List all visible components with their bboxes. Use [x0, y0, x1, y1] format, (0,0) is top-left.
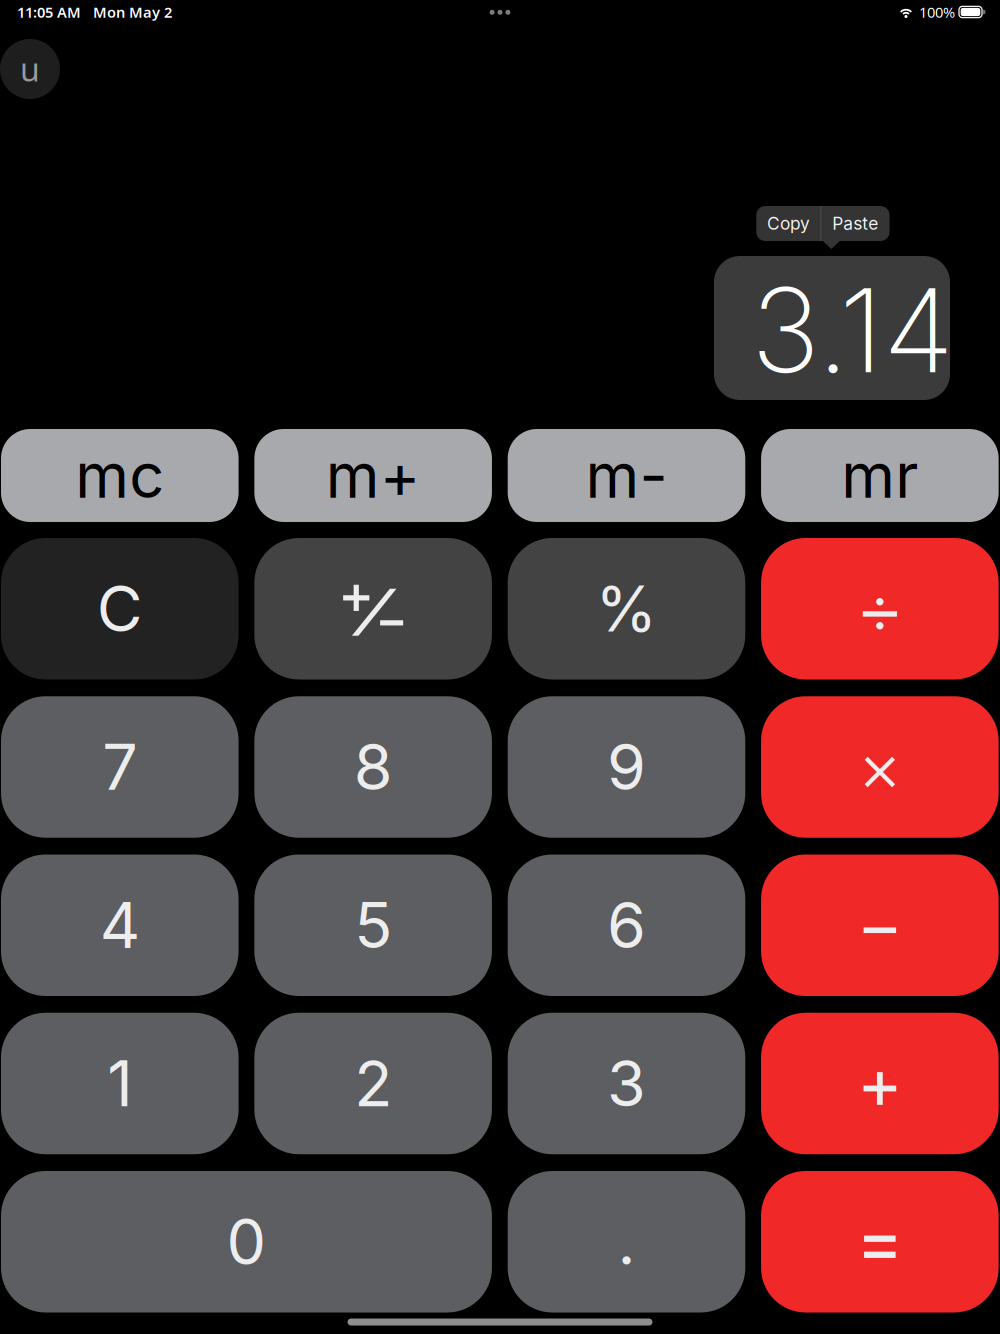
button[interactable]: 5 [254, 854, 492, 996]
staticText: 0 [226, 1204, 266, 1280]
button[interactable]: mr [761, 429, 999, 522]
button[interactable]: 6 [508, 854, 745, 996]
staticText: . [617, 1204, 635, 1280]
button[interactable]: 1 [1, 1013, 239, 1154]
staticText: 9 [607, 729, 646, 805]
button[interactable]: Account [0, 39, 60, 99]
staticText: 1 [107, 1046, 132, 1121]
button[interactable]: 7 [1, 696, 239, 838]
staticText: 100% [919, 2, 955, 22]
staticText: Copy [767, 213, 810, 234]
button[interactable]: Add [761, 1013, 999, 1154]
button[interactable]: Divide [761, 538, 999, 679]
staticText: 6 [607, 887, 646, 963]
staticText: mr [841, 438, 918, 513]
button[interactable]: m- [508, 429, 745, 522]
staticText: 3 [607, 1046, 646, 1121]
staticText: 5 [354, 887, 392, 963]
button[interactable]: Multiply [761, 696, 999, 838]
button[interactable]: 4 [1, 854, 239, 996]
staticText: m- [585, 438, 667, 513]
button[interactable]: 0 [1, 1171, 492, 1312]
button[interactable]: 8 [254, 696, 492, 838]
button[interactable]: Subtract [761, 854, 999, 996]
button[interactable]: Change sign [254, 538, 492, 679]
staticText: Paste [832, 213, 878, 234]
staticText: 11:05 AM [17, 2, 81, 22]
staticText: m+ [326, 438, 421, 513]
button[interactable]: % [508, 538, 745, 679]
staticText: 7 [102, 729, 137, 805]
staticText: u [20, 48, 40, 90]
staticText: C [97, 571, 143, 647]
button[interactable]: mc [1, 429, 239, 522]
staticText: 4 [100, 887, 140, 963]
button[interactable]: 9 [508, 696, 745, 838]
staticText: 2 [354, 1046, 392, 1121]
staticText: mc [75, 438, 164, 513]
button[interactable]: 2 [254, 1013, 492, 1154]
button[interactable]: Paste [821, 206, 889, 241]
button[interactable]: Equals [761, 1171, 999, 1312]
button[interactable]: 3 [508, 1013, 745, 1154]
button[interactable]: m+ [254, 429, 492, 522]
staticText: % [595, 571, 657, 647]
button[interactable]: C [1, 538, 239, 679]
staticText: Mon May 2 [81, 2, 172, 22]
button[interactable]: Copy [756, 206, 821, 241]
staticText: 8 [354, 729, 393, 805]
staticText: 3.14 [751, 260, 954, 400]
button[interactable]: . [508, 1171, 745, 1312]
